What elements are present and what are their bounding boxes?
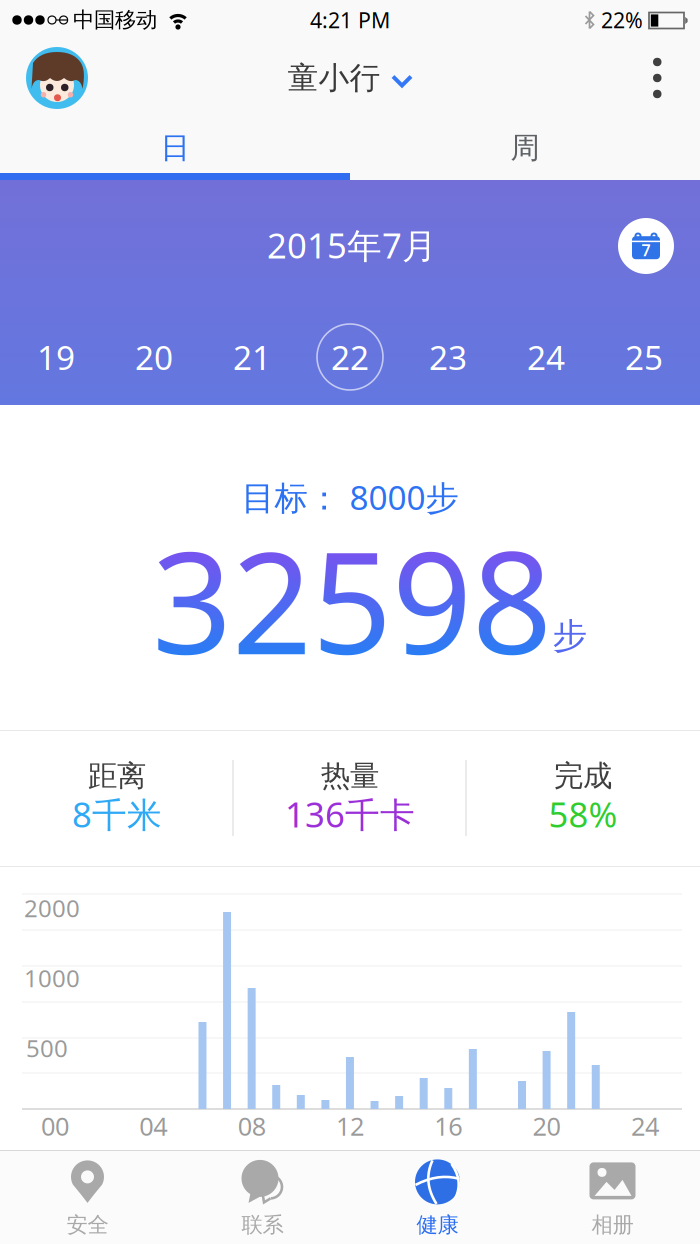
staticText: 中国移动: [73, 7, 157, 33]
button[interactable]: [26, 47, 88, 109]
button[interactable]: [652, 58, 662, 98]
staticText: 21: [233, 335, 271, 379]
button[interactable]: 安全: [0, 1150, 175, 1244]
button[interactable]: 童小行: [287, 59, 412, 97]
staticText: 安全: [66, 1212, 108, 1238]
button[interactable]: 24: [497, 312, 595, 402]
staticText: 23: [429, 335, 467, 379]
button[interactable]: 7: [618, 218, 674, 274]
staticText: 22%: [601, 6, 643, 34]
staticText: 步: [552, 615, 587, 657]
staticText: 20: [135, 335, 173, 379]
staticText: 19: [37, 335, 75, 379]
staticText: 4:21 PM: [310, 6, 390, 34]
staticText: 22: [331, 335, 369, 379]
staticText: 00: [41, 1109, 69, 1143]
staticText: 58%: [548, 791, 617, 837]
staticText: 500: [26, 1032, 68, 1064]
staticText: 08: [238, 1109, 266, 1143]
staticText: 周: [510, 130, 539, 166]
button[interactable]: 20: [105, 312, 203, 402]
staticText: 相册: [591, 1212, 633, 1238]
staticText: 目标： 8000步: [241, 475, 458, 519]
staticText: 2015年7月: [267, 222, 437, 268]
button[interactable]: 健康: [350, 1150, 525, 1244]
staticText: 童小行: [287, 59, 380, 97]
staticText: 热量: [321, 758, 379, 794]
staticText: 健康: [416, 1212, 458, 1238]
staticText: 12: [336, 1109, 364, 1143]
staticText: 24: [527, 335, 565, 379]
staticText: 16: [434, 1109, 462, 1143]
staticText: 25: [625, 335, 663, 379]
staticText: 04: [139, 1109, 167, 1143]
button[interactable]: 19: [7, 312, 105, 402]
staticText: 24: [631, 1109, 659, 1143]
staticText: 7: [641, 239, 650, 261]
staticText: 日: [160, 130, 189, 166]
button[interactable]: 22: [301, 312, 399, 402]
button[interactable]: 21: [203, 312, 301, 402]
button[interactable]: 相册: [525, 1150, 700, 1244]
staticText: 距离: [88, 758, 146, 794]
button[interactable]: 联系: [175, 1150, 350, 1244]
staticText: 2000: [24, 892, 80, 924]
staticText: 136千卡: [285, 791, 415, 837]
staticText: 联系: [241, 1212, 283, 1238]
button[interactable]: 25: [595, 312, 693, 402]
button[interactable]: 日: [0, 116, 350, 180]
button[interactable]: 23: [399, 312, 497, 402]
staticText: 1000: [24, 962, 80, 994]
staticText: 完成: [554, 758, 612, 794]
staticText: 8千米: [72, 791, 162, 837]
button[interactable]: 周: [350, 116, 700, 180]
staticText: 20: [533, 1109, 561, 1143]
